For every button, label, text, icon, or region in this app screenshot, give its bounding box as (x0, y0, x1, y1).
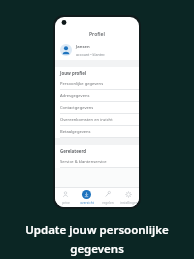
staticText: Jouw profiel (60, 70, 87, 76)
button[interactable]: prive (55, 187, 76, 207)
button[interactable]: Service & klantenservice (55, 156, 139, 167)
staticText: Betaalgegevens (60, 129, 91, 135)
staticText: Profiel (89, 31, 105, 38)
staticText: regelen (102, 201, 114, 205)
staticText: Gerelateerd (60, 148, 87, 154)
button[interactable]: Adresgegevens (55, 90, 139, 101)
staticText: Update jouw persoonlijke (25, 222, 169, 238)
staticText: instellingen (120, 201, 138, 205)
button[interactable]: Contactgegevens (55, 102, 139, 113)
button[interactable]: instellingen (118, 187, 139, 207)
staticText: Persoonlijke gegevens (60, 81, 104, 87)
button[interactable]: Overeenkomsten en inzicht (55, 114, 139, 125)
button[interactable]: overzicht (76, 187, 97, 207)
staticText: Overeenkomsten en inzicht (60, 117, 113, 123)
staticText: Contactgegevens (60, 105, 94, 111)
staticText: Adresgegevens (60, 93, 90, 99)
button[interactable]: regelen (97, 187, 118, 207)
staticText: overzicht (80, 201, 94, 205)
button[interactable]: Jansen (55, 40, 139, 60)
button[interactable]: Persoonlijke gegevens (55, 78, 139, 89)
staticText: Service & klantenservice (60, 159, 107, 165)
staticText: gegevens (70, 241, 124, 257)
staticText: Jansen (76, 44, 90, 50)
staticText: account • klantnr. (76, 52, 106, 57)
staticText: prive (62, 201, 70, 205)
button[interactable]: Betaalgegevens (55, 126, 139, 137)
